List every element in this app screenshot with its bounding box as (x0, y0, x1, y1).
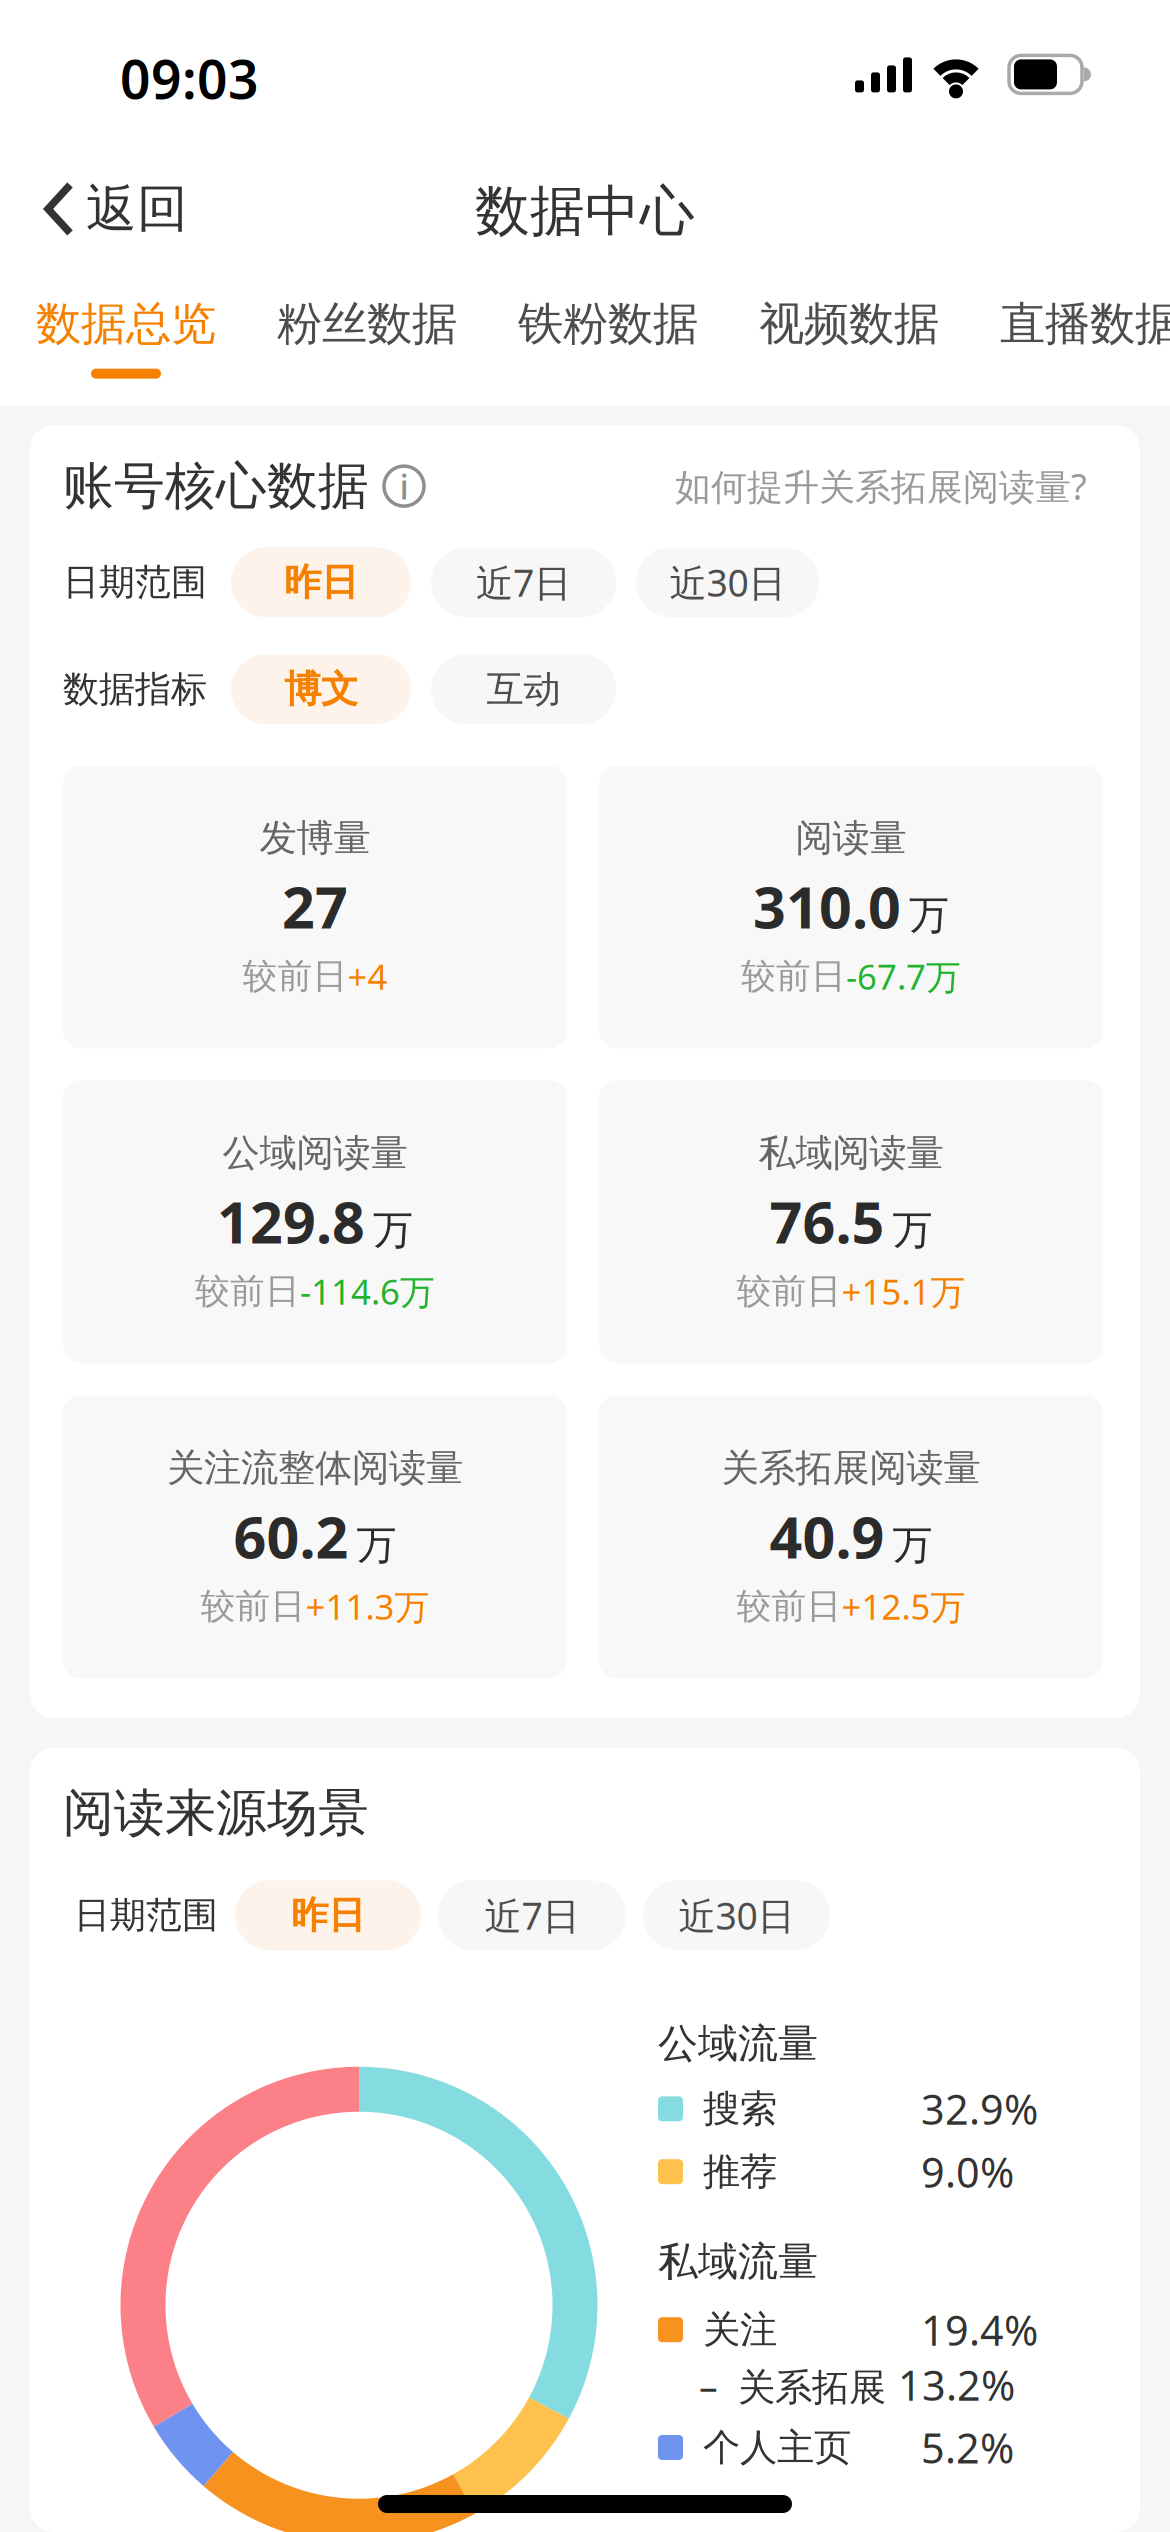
staticText: 博文 (284, 666, 358, 712)
staticText: 近30日 (678, 1890, 794, 1940)
staticText: 13.2% (898, 2357, 1015, 2412)
staticText: 万 (356, 1520, 396, 1570)
button[interactable]: 昨日 (231, 547, 411, 617)
button[interactable]: 如何提升关系拓展阅读量? (675, 462, 1087, 510)
staticText: 数据总览 (36, 296, 216, 352)
staticText: 直播数据 (1000, 296, 1170, 352)
staticText: 公域流量 (658, 2019, 818, 2068)
staticText: 09:03 (120, 43, 259, 114)
staticText: 310.0 (753, 868, 901, 944)
staticText: 阅读量 (795, 815, 906, 861)
staticText: 万 (892, 1205, 932, 1255)
staticText: 较前日 (741, 955, 846, 998)
button[interactable]: 互动 (431, 654, 616, 724)
staticText: 关注流整体阅读量 (167, 1445, 463, 1491)
staticText: 较前日 (736, 1270, 841, 1313)
button[interactable]: 说明 (381, 463, 427, 509)
staticText: 昨日 (291, 1892, 365, 1938)
button[interactable]: 近30日 (643, 1880, 830, 1950)
staticText: 76.5 (769, 1183, 884, 1259)
staticText: 私域阅读量 (758, 1130, 943, 1176)
button[interactable]: 粉丝数据 (277, 296, 457, 352)
staticText: 搜索 (703, 2086, 777, 2132)
staticText: 32.9% (921, 2081, 1038, 2136)
staticText: 阅读来源场景 (63, 1782, 369, 1844)
staticText: 27 (282, 868, 348, 944)
staticText: +4 (347, 953, 387, 999)
button[interactable]: 铁粉数据 (518, 296, 698, 352)
staticText: 如何提升关系拓展阅读量? (675, 462, 1087, 510)
staticText: 关注 (703, 2307, 777, 2353)
button[interactable]: 直播数据 (1000, 296, 1170, 352)
staticText: 粉丝数据 (277, 296, 457, 352)
button[interactable]: 返回 (43, 178, 188, 240)
staticText: 日期范围 (74, 1893, 218, 1937)
staticText: 近7日 (476, 557, 571, 607)
staticText: 万 (373, 1205, 413, 1255)
staticText: 较前日 (736, 1585, 841, 1628)
button[interactable]: 昨日 (235, 1880, 421, 1950)
staticText: 互动 (486, 666, 560, 712)
staticText: 较前日 (195, 1270, 300, 1313)
staticText: 万 (892, 1520, 932, 1570)
button[interactable]: 博文 (231, 654, 411, 724)
staticText: 9.0% (921, 2144, 1014, 2199)
staticText: 个人主页 (703, 2425, 851, 2470)
staticText: 铁粉数据 (518, 296, 698, 352)
staticText: 返回 (86, 178, 188, 240)
button[interactable]: 数据总览 (36, 296, 216, 379)
staticText: 视频数据 (759, 296, 939, 352)
staticText: 公域阅读量 (222, 1130, 407, 1176)
staticText: 较前日 (200, 1585, 305, 1628)
staticText: -67.7万 (846, 953, 961, 999)
staticText: 5.2% (921, 2420, 1014, 2475)
staticText: 推荐 (703, 2149, 777, 2195)
staticText: +12.5万 (841, 1583, 965, 1629)
staticText: 129.8 (217, 1183, 365, 1259)
button[interactable]: 近7日 (431, 547, 616, 617)
staticText: 昨日 (284, 559, 358, 605)
staticText: 私域流量 (658, 2237, 818, 2286)
staticText: -114.6万 (300, 1268, 435, 1314)
staticText: 日期范围 (63, 560, 207, 604)
staticText: +15.1万 (841, 1268, 965, 1314)
staticText: 关系拓展阅读量 (721, 1445, 980, 1491)
staticText: 40.9 (769, 1498, 884, 1574)
staticText: 万 (909, 890, 949, 940)
staticText: +11.3万 (305, 1583, 429, 1629)
button[interactable]: 近7日 (438, 1880, 626, 1950)
staticText: – 关系拓展 (699, 2361, 886, 2411)
button[interactable]: 近30日 (636, 547, 819, 617)
staticText: 数据指标 (63, 667, 207, 711)
staticText: 账号核心数据 (63, 455, 369, 517)
staticText: 近30日 (669, 557, 785, 607)
staticText: 发博量 (259, 815, 370, 861)
staticText: 19.4% (921, 2302, 1038, 2357)
staticText: 数据中心 (475, 178, 695, 245)
button[interactable]: 视频数据 (759, 296, 939, 352)
staticText: 60.2 (233, 1498, 348, 1574)
staticText: i (399, 463, 408, 509)
staticText: 较前日 (242, 955, 347, 998)
staticText: 近7日 (484, 1890, 579, 1940)
